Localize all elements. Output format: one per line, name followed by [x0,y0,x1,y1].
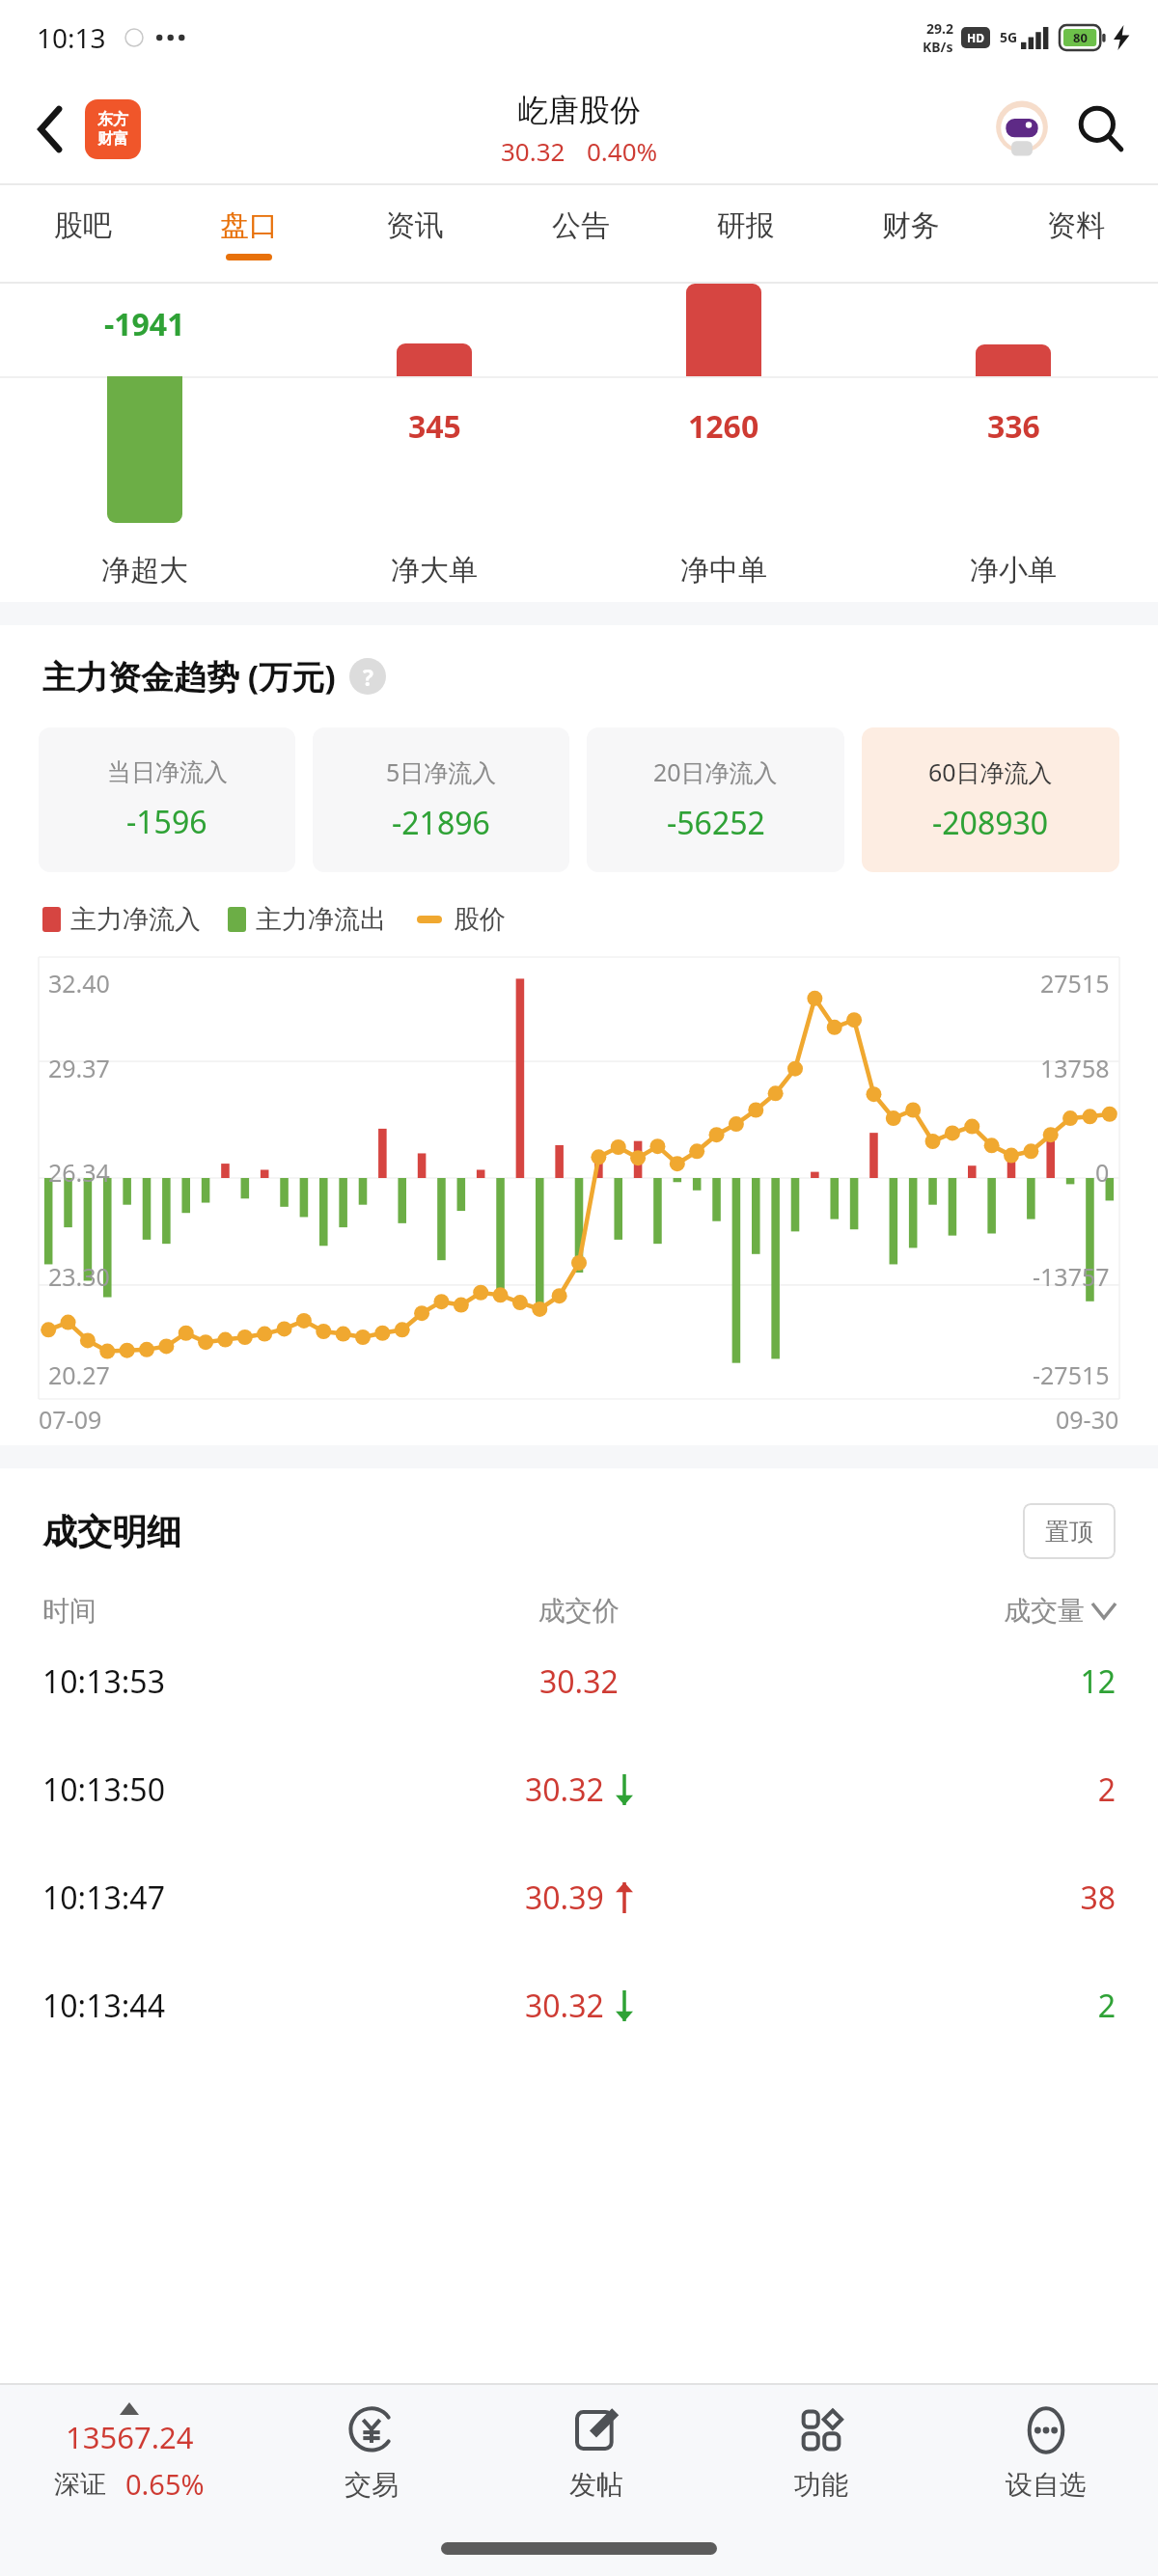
staticText: 当日净流入 [107,757,228,787]
staticText: 资讯 [386,207,444,244]
staticText: 10:13:47 [42,1877,400,1919]
staticText: 10:13:53 [42,1660,400,1703]
button[interactable]: 公告 [498,185,663,282]
staticText: 时间 [42,1594,400,1628]
staticText: 13758 [1040,1052,1110,1084]
staticText: -1941 [104,303,185,345]
staticText: 10:13 [37,19,106,56]
staticText: 30.32 [525,1768,604,1811]
staticText: 成交明细 [42,1510,181,1553]
button[interactable]: 股吧 [0,185,166,282]
staticText: 主力净流入 [70,903,201,936]
staticText: -27515 [1033,1358,1110,1391]
staticText: 股价 [454,903,506,936]
button[interactable]: Back [21,100,79,158]
staticText: HD [967,30,984,45]
staticText: ? [363,662,373,692]
staticText: -56252 [667,802,765,844]
staticText: 2 [758,1768,1116,1811]
staticText: 0.65% [125,2465,205,2503]
staticText: 345 [408,405,461,448]
button[interactable]: 20日净流入 [587,727,844,872]
button[interactable]: 当日净流入 [39,727,295,872]
staticText: 屹唐股份 [517,91,641,129]
staticText: 23.30 [48,1260,110,1293]
staticText: 30.39 [525,1877,604,1919]
staticText: 功能 [794,2468,848,2502]
staticText: 成交价 [400,1594,758,1628]
staticText: 38 [758,1877,1116,1919]
staticText: 07-09 [39,1403,102,1436]
staticText: 净小单 [970,552,1057,589]
staticText: 5G [1000,28,1018,46]
button[interactable]: 功能 [708,2385,933,2520]
staticText: 主力净流出 [256,903,386,936]
staticText: 交易 [345,2468,399,2502]
staticText: 1260 [688,405,759,448]
button[interactable]: 财务 [828,185,993,282]
staticText: -1596 [126,801,207,843]
staticText: 5日净流入 [386,755,497,788]
button[interactable]: 10:13:50 [0,1736,1158,1844]
button[interactable]: East Money logo [85,99,141,159]
staticText: 29.2 [926,19,953,38]
button[interactable]: 5日净流入 [313,727,569,872]
staticText: 深证 [54,2468,106,2501]
staticText: 0 [1095,1156,1110,1189]
staticText: 09-30 [1056,1403,1119,1436]
button[interactable]: 资讯 [332,185,498,282]
staticText: 80 [1073,29,1088,46]
staticText: 27515 [1040,967,1110,1000]
button[interactable]: 设自选 [933,2385,1158,2520]
staticText: -13757 [1033,1260,1110,1293]
staticText: 26.34 [48,1156,110,1189]
staticText: 股吧 [54,207,112,244]
button[interactable]: 60日净流入 [862,727,1119,872]
staticText: 13567.24 [66,2417,194,2457]
staticText: 32.40 [48,967,110,1000]
staticText: KB/s [923,38,953,56]
staticText: 财富 [97,129,128,149]
button[interactable]: 盘口 [166,185,332,282]
staticText: 净超大 [101,552,188,589]
button[interactable]: Search [1069,97,1133,161]
button[interactable]: 10:13:53 [0,1628,1158,1736]
button[interactable]: 置顶 [1023,1503,1116,1559]
staticText: 盘口 [220,207,278,244]
staticText: 336 [987,405,1040,448]
staticText: 30.32 [539,1660,619,1703]
staticText: 2 [758,1985,1116,2027]
staticText: -21896 [392,802,490,844]
staticText: 公告 [552,207,610,244]
staticText: 成交量 [1004,1594,1085,1628]
button[interactable]: 研报 [663,185,828,282]
button[interactable]: 13567.24 [0,2385,259,2520]
staticText: 研报 [717,207,775,244]
staticText: 净大单 [391,552,478,589]
button[interactable]: 10:13:44 [0,1952,1158,2060]
staticText: 主力资金趋势 (万元) [42,654,336,699]
staticText: 财务 [882,207,940,244]
staticText: 发帖 [569,2468,623,2502]
staticText: 29.37 [48,1052,110,1084]
button[interactable]: 10:13:47 [0,1844,1158,1952]
staticText: 0.40% [587,134,658,168]
staticText: 20.27 [48,1358,110,1391]
button[interactable]: Help [349,658,386,695]
staticText: 净中单 [680,552,767,589]
staticText: 10:13:44 [42,1985,400,2027]
button[interactable]: 交易 [259,2385,483,2520]
button[interactable]: AI assistant [986,94,1058,165]
staticText: 东方 [97,110,128,129]
staticText: 30.32 [501,134,565,168]
staticText: 60日净流入 [928,755,1053,788]
button[interactable]: 发帖 [483,2385,708,2520]
button[interactable]: 资料 [993,185,1158,282]
staticText: 置顶 [1045,1517,1093,1547]
staticText: -208930 [932,802,1049,844]
staticText: 12 [758,1660,1116,1703]
staticText: 10:13:50 [42,1768,400,1811]
staticText: 资料 [1047,207,1105,244]
staticText: 20日净流入 [653,755,778,788]
staticText: 30.32 [525,1985,604,2027]
